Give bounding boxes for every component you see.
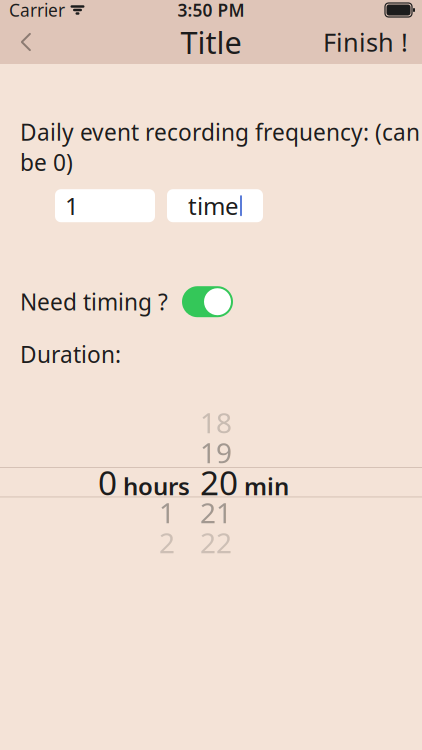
staticText: hours [123, 470, 190, 502]
button[interactable]: Back [0, 20, 52, 64]
staticText: 20 [200, 460, 238, 504]
staticText: Finish ! [323, 25, 408, 59]
staticText: time [188, 190, 239, 222]
button[interactable]: Need timing, on [182, 286, 233, 317]
staticText: Daily event recording frequency: (can be… [20, 117, 420, 177]
staticText: Carrier [9, 0, 65, 21]
staticText: 1 [65, 190, 79, 222]
staticText: 21 [200, 494, 232, 531]
staticText: min [244, 470, 289, 502]
staticText: Need timing ? [20, 287, 168, 317]
staticText: 0 [98, 460, 117, 504]
staticText: 1 [159, 494, 175, 531]
staticText: Duration: [20, 339, 121, 369]
staticText: 18 [200, 404, 232, 441]
button[interactable]: time [167, 189, 263, 222]
staticText: Title [180, 21, 241, 63]
button[interactable]: 1 [55, 189, 155, 222]
staticText: 3:50 PM [177, 0, 244, 21]
staticText: 2 [159, 524, 175, 561]
staticText: 22 [200, 524, 232, 561]
button[interactable]: Finish ! [309, 20, 422, 64]
staticText: 19 [200, 434, 232, 471]
